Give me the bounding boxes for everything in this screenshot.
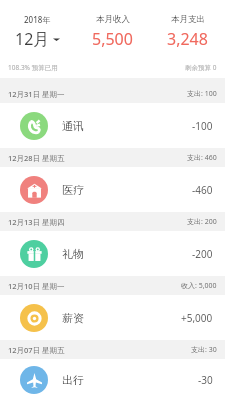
staticText: 支出: 100 (187, 89, 217, 99)
staticText: 剩余预算 0 (185, 63, 217, 72)
staticText: 支出: 200 (187, 217, 217, 227)
staticText: 出行 (62, 373, 84, 387)
staticText: 本月支出 (171, 14, 205, 25)
other: 通讯 (26, 118, 43, 135)
staticText: 12月28日 星期五 (8, 153, 65, 163)
staticText: 收入: 5,000 (181, 281, 217, 291)
staticText: 5,500 (92, 28, 133, 50)
staticText: 2018年 (24, 14, 51, 25)
staticText: +5,000 (181, 311, 213, 325)
other: 医疗 (26, 182, 43, 199)
staticText: -200 (192, 247, 213, 261)
other: 礼物 (26, 246, 43, 263)
button[interactable]: 薪资 (0, 295, 225, 340)
staticText: -460 (192, 183, 213, 197)
button[interactable]: 出行 (0, 359, 225, 400)
staticText: 12月 (15, 28, 50, 50)
staticText: 支出: 30 (191, 345, 217, 355)
staticText: 3,248 (167, 28, 208, 50)
staticText: 12月31日 星期一 (8, 89, 65, 99)
staticText: 薪资 (62, 311, 84, 325)
staticText: 本月收入 (96, 14, 130, 25)
staticText: 医疗 (62, 183, 84, 197)
button[interactable]: 礼物 (0, 231, 225, 276)
staticText: -30 (198, 373, 213, 387)
staticText: 礼物 (62, 247, 84, 261)
staticText: 12月13日 星期四 (8, 217, 65, 227)
button[interactable]: 通讯 (0, 103, 225, 148)
staticText: 108.3% 预算已用 (8, 63, 58, 72)
other: 薪资 (26, 310, 43, 327)
staticText: 支出: 460 (187, 153, 217, 163)
button[interactable]: 2018年 (0, 14, 75, 50)
other: 出行 (26, 372, 43, 389)
staticText: 通讯 (62, 119, 84, 133)
staticText: -100 (192, 119, 213, 133)
staticText: 12月10日 星期一 (8, 281, 65, 291)
button[interactable]: 医疗 (0, 167, 225, 212)
staticText: 12月07日 星期五 (8, 345, 65, 355)
